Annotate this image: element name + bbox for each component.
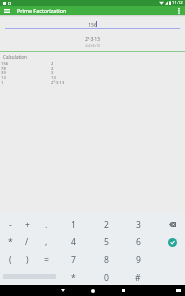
- button[interactable]: Back: [48, 285, 78, 296]
- staticText: *: [71, 272, 76, 284]
- staticText: 156: [1, 61, 9, 67]
- staticText: 8: [104, 254, 109, 266]
- button[interactable]: Home: [78, 285, 108, 296]
- button[interactable]: Open navigation menu: [0, 6, 14, 15]
- staticText: 7: [71, 254, 76, 266]
- button[interactable]: /: [18, 233, 36, 250]
- button[interactable]: .: [37, 216, 55, 233]
- staticText: 156: [0, 22, 185, 29]
- staticText: ,: [45, 236, 48, 248]
- staticText: #: [135, 272, 141, 284]
- staticText: 39: [1, 70, 6, 76]
- button[interactable]: *: [1, 233, 19, 250]
- staticText: 2²·3·13: [51, 80, 65, 86]
- staticText: 11:12: [172, 0, 183, 6]
- staticText: 78: [1, 66, 6, 72]
- staticText: 1: [1, 80, 4, 86]
- button[interactable]: (: [1, 251, 19, 268]
- staticText: .: [45, 219, 48, 231]
- staticText: Calculation: [3, 54, 27, 60]
- button[interactable]: Backspace: [163, 216, 181, 232]
- button[interactable]: 2: [97, 216, 115, 233]
- button[interactable]: -: [1, 216, 19, 233]
- staticText: 2×2×3×13: [0, 44, 185, 48]
- button[interactable]: 6: [129, 233, 147, 250]
- button[interactable]: #: [129, 269, 147, 286]
- button[interactable]: 8: [97, 251, 115, 268]
- button[interactable]: =: [37, 251, 55, 268]
- button[interactable]: +: [18, 216, 36, 233]
- staticText: 6: [136, 236, 141, 248]
- staticText: /: [25, 236, 29, 248]
- staticText: -: [9, 219, 12, 231]
- staticText: 1: [71, 219, 76, 231]
- button[interactable]: 5: [97, 233, 115, 250]
- staticText: 3: [51, 70, 54, 76]
- button[interactable]: ): [18, 251, 36, 268]
- staticText: 2: [51, 66, 54, 72]
- staticText: 2: [51, 61, 54, 67]
- button[interactable]: 9: [129, 251, 147, 268]
- button[interactable]: 7: [64, 251, 82, 268]
- button[interactable]: Enter: [163, 234, 181, 250]
- button[interactable]: Recent apps: [108, 285, 138, 296]
- staticText: 13: [1, 75, 6, 81]
- staticText: 2: [104, 219, 109, 231]
- button[interactable]: *: [64, 269, 82, 286]
- staticText: =: [44, 254, 49, 266]
- staticText: 13: [51, 75, 56, 81]
- button[interactable]: 1: [64, 216, 82, 233]
- staticText: 0: [104, 272, 109, 284]
- staticText: 2²·3·13: [0, 36, 185, 42]
- staticText: 5: [104, 236, 109, 248]
- staticText: 9: [136, 254, 141, 266]
- staticText: ): [26, 254, 29, 266]
- button[interactable]: ,: [37, 233, 55, 250]
- button[interactable]: More options: [173, 6, 185, 15]
- button[interactable]: Hide keyboard: [175, 288, 181, 293]
- button[interactable]: 3: [129, 216, 147, 233]
- staticText: +: [25, 219, 30, 231]
- button[interactable]: 0: [97, 269, 115, 286]
- staticText: 4: [71, 236, 76, 248]
- staticText: (: [9, 254, 12, 266]
- button[interactable]: 4: [64, 233, 82, 250]
- staticText: *: [8, 236, 13, 248]
- staticText: 3: [136, 219, 141, 231]
- staticText: Prime Factorization: [17, 7, 67, 14]
